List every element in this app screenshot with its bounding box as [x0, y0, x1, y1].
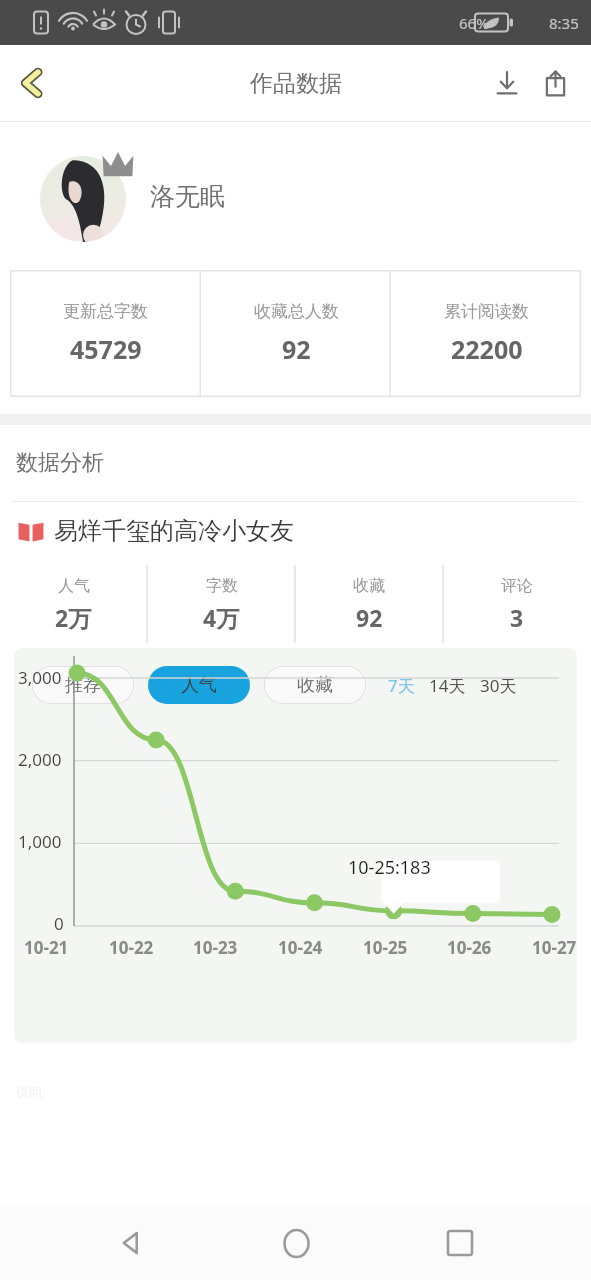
staticText: 作品数据: [250, 69, 342, 98]
staticText: 2,000: [18, 748, 62, 771]
staticText: 92: [356, 602, 383, 633]
button[interactable]: Home: [263, 1210, 329, 1276]
staticText: 4万: [203, 602, 240, 633]
staticText: 3,000: [18, 666, 62, 689]
button[interactable]: Download: [483, 59, 531, 107]
staticText: 收藏: [297, 674, 333, 697]
staticText: 字数: [206, 576, 238, 596]
staticText: 人气: [58, 576, 90, 596]
staticText: 10-23: [193, 936, 238, 959]
button[interactable]: 30天: [480, 674, 517, 697]
button[interactable]: 人气: [148, 666, 250, 704]
button[interactable]: 收藏: [264, 666, 366, 704]
staticText: 10-25:183: [348, 855, 431, 880]
staticText: 1,000: [18, 830, 62, 853]
button[interactable]: Back: [6, 57, 58, 109]
staticText: 92: [282, 332, 311, 366]
button[interactable]: 易烊千玺的高冷小女友: [18, 502, 591, 560]
staticText: 10-25: [363, 936, 408, 959]
button[interactable]: Back: [98, 1210, 164, 1276]
staticText: 3: [510, 602, 524, 633]
staticText: 10-27: [532, 936, 577, 959]
staticText: 累计阅读数: [444, 301, 529, 322]
staticText: 45729: [70, 332, 142, 366]
staticText: 洛无眠: [150, 181, 225, 212]
button[interactable]: 推荐: [32, 666, 134, 704]
button[interactable]: Share: [531, 59, 579, 107]
staticText: 更新总字数: [63, 301, 148, 322]
button[interactable]: Recents: [427, 1210, 493, 1276]
staticText: 10-24: [278, 936, 323, 959]
staticText: 推荐: [65, 674, 101, 697]
staticText: 0: [54, 912, 64, 935]
staticText: 10-22: [109, 936, 154, 959]
staticText: 10-26: [447, 936, 492, 959]
button[interactable]: 14天: [429, 674, 466, 697]
button[interactable]: 7天: [388, 674, 415, 697]
staticText: 收藏: [353, 576, 385, 596]
staticText: 66%: [459, 13, 489, 33]
staticText: 评论: [501, 576, 533, 596]
staticText: 2万: [55, 602, 92, 633]
staticText: 易烊千玺的高冷小女友: [54, 516, 294, 546]
staticText: 收藏总人数: [254, 301, 339, 322]
staticText: 说明:: [16, 1083, 46, 1101]
staticText: 22200: [451, 332, 523, 366]
staticText: 8:35: [549, 13, 579, 33]
staticText: 人气: [181, 674, 217, 697]
staticText: 10-21: [24, 936, 69, 959]
staticText: 数据分析: [16, 449, 104, 477]
